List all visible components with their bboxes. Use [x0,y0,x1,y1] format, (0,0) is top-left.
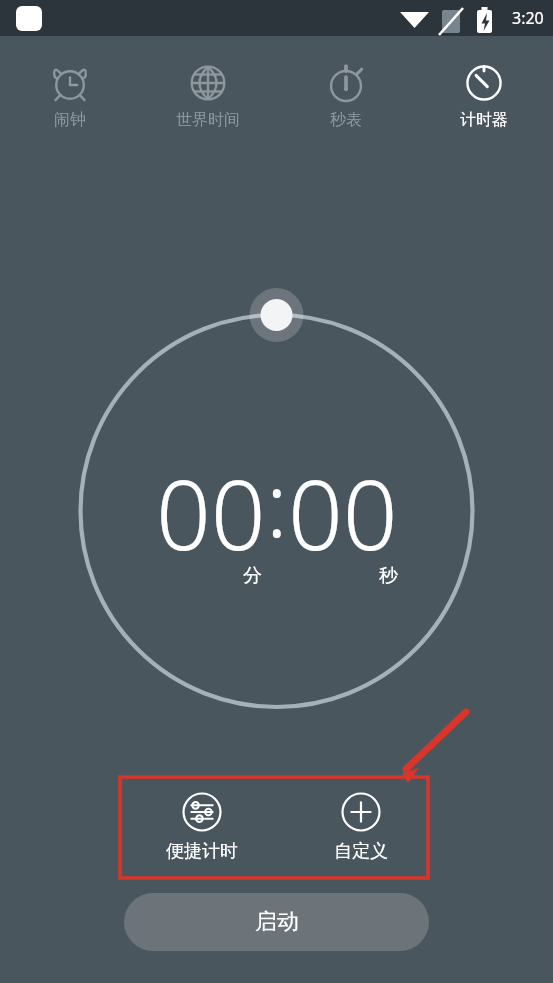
staticText: 00 [288,447,398,578]
button[interactable]: 便捷计时 [146,784,258,869]
staticText: 分 [243,564,262,588]
staticText: 自定义 [334,840,388,863]
button[interactable]: 世界时间 [139,54,277,136]
button[interactable]: 自定义 [314,784,408,869]
staticText: 秒 [379,564,398,588]
staticText: 00 [156,447,266,578]
staticText: 世界时间 [176,110,240,130]
staticText: 秒表 [330,110,362,130]
staticText: 闹钟 [54,110,86,130]
staticText: : [266,443,288,563]
button[interactable]: 秒表 [277,54,415,136]
staticText: 3:20 [512,7,544,29]
button[interactable]: 闹钟 [0,54,139,136]
staticText: 启动 [255,908,299,936]
staticText: 便捷计时 [166,840,238,863]
staticText: 计时器 [460,110,508,130]
button[interactable]: 计时器 [415,54,553,136]
button[interactable]: 启动 [124,893,429,951]
